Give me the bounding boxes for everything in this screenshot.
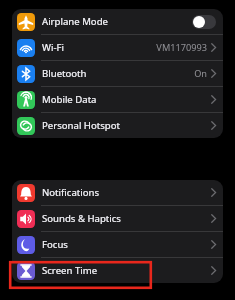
staticText: Airplane Mode <box>42 15 192 28</box>
staticText: Wi-Fi <box>42 41 156 54</box>
button[interactable]: Mobile Data <box>12 87 223 113</box>
staticText: Focus <box>42 238 211 251</box>
button[interactable]: Focus <box>12 232 223 258</box>
staticText: Notifications <box>42 186 211 199</box>
staticText: On <box>194 67 207 80</box>
button[interactable]: Notifications <box>12 180 223 206</box>
staticText: VM1170993 <box>156 41 207 54</box>
button[interactable]: Personal Hotspot <box>12 113 223 138</box>
staticText: Bluetooth <box>42 67 194 80</box>
staticText: Personal Hotspot <box>42 119 211 132</box>
staticText: Mobile Data <box>42 93 211 106</box>
button[interactable]: Airplane Mode toggle, off <box>192 15 216 29</box>
staticText: Sounds & Haptics <box>42 212 211 225</box>
button[interactable]: Sounds & Haptics <box>12 206 223 232</box>
button[interactable]: Wi-Fi <box>12 35 223 61</box>
button[interactable]: Airplane Mode <box>12 9 223 35</box>
staticText: Screen Time <box>42 264 211 277</box>
button[interactable]: Screen Time <box>12 258 223 283</box>
button[interactable]: Bluetooth <box>12 61 223 87</box>
